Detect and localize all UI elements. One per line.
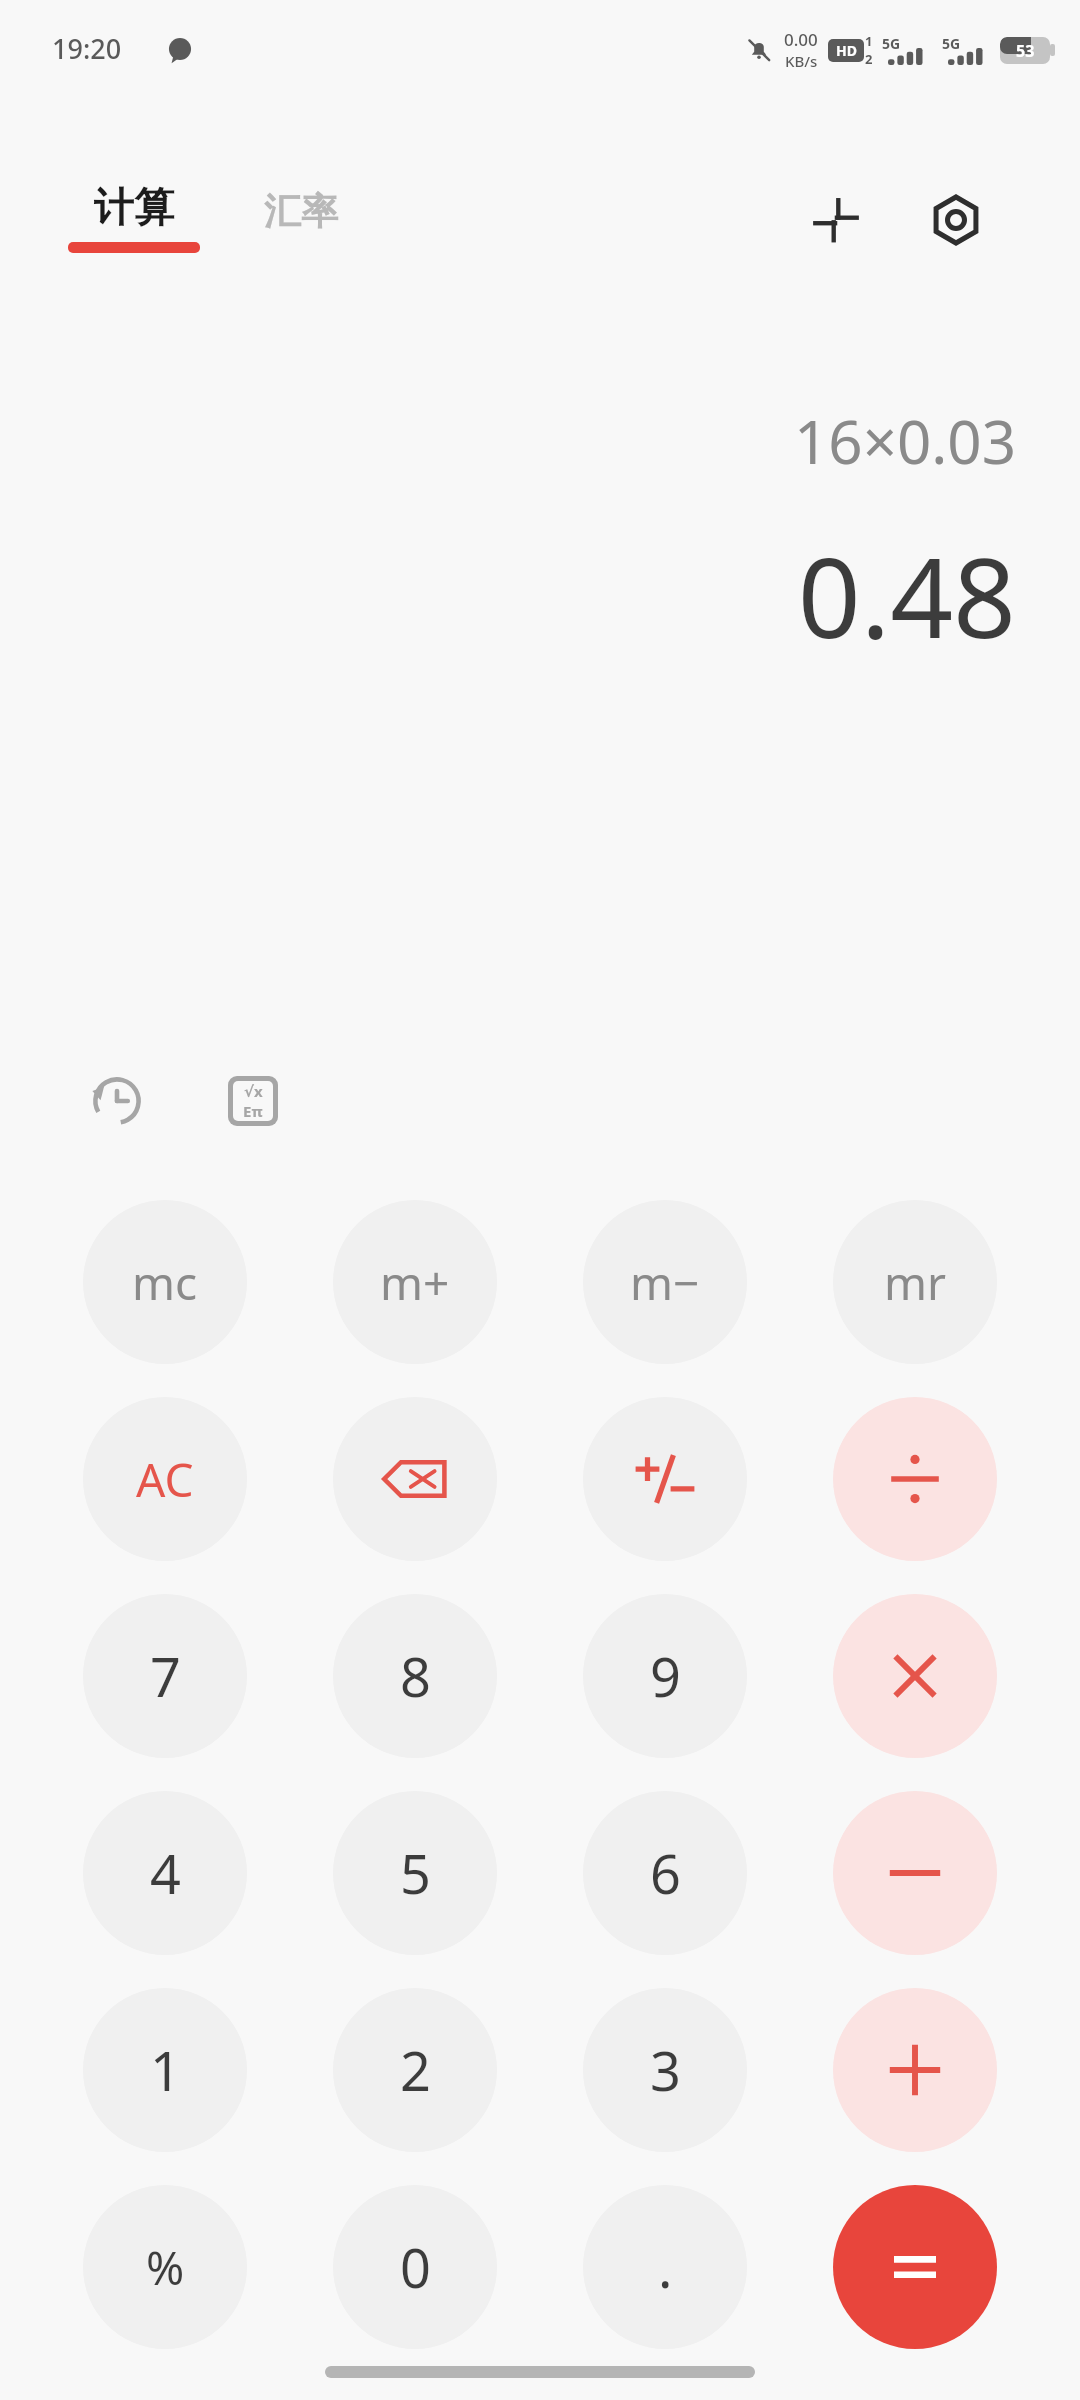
staticText: 9	[650, 1639, 681, 1713]
button[interactable]: AC	[83, 1397, 247, 1561]
staticText: 计算	[94, 182, 174, 232]
staticText: 2	[865, 50, 873, 68]
staticText: AC	[136, 1448, 194, 1511]
button[interactable]: mr	[833, 1200, 997, 1364]
staticText: 1	[865, 32, 873, 50]
staticText: 0.48	[797, 520, 1016, 670]
staticText: 19:20	[52, 30, 122, 67]
staticText: 1	[150, 2033, 181, 2107]
button[interactable]: 2	[333, 1988, 497, 2152]
button[interactable]: 3	[583, 1988, 747, 2152]
staticText: mr	[884, 1251, 947, 1314]
staticText: m+	[380, 1251, 450, 1314]
staticText: 5G	[942, 34, 961, 53]
staticText: mc	[132, 1251, 198, 1314]
button[interactable]: 5	[333, 1791, 497, 1955]
staticText: KB/s	[785, 51, 818, 71]
button[interactable]: Expand	[800, 184, 872, 256]
button[interactable]: 6	[583, 1791, 747, 1955]
staticText: 7	[150, 1639, 181, 1713]
button[interactable]: m−	[583, 1200, 747, 1364]
button[interactable]: 8	[333, 1594, 497, 1758]
staticText: 4	[150, 1836, 181, 1910]
button[interactable]: Equals	[833, 2185, 997, 2349]
button[interactable]: 4	[83, 1791, 247, 1955]
staticText: %	[146, 2236, 185, 2299]
staticText: 0	[400, 2230, 431, 2304]
staticText: 5G	[882, 34, 901, 53]
button[interactable]: 7	[83, 1594, 247, 1758]
staticText: Eπ	[243, 1101, 263, 1121]
button[interactable]: 汇率	[258, 182, 344, 241]
button[interactable]: 0	[333, 2185, 497, 2349]
staticText: 3	[650, 2033, 681, 2107]
button[interactable]: Plus	[833, 1988, 997, 2152]
button[interactable]: mc	[83, 1200, 247, 1364]
staticText: 汇率	[264, 188, 338, 235]
button[interactable]: Backspace	[333, 1397, 497, 1561]
button[interactable]: Toggle sign	[583, 1397, 747, 1561]
button[interactable]: %	[83, 2185, 247, 2349]
staticText: 2	[400, 2033, 431, 2107]
button[interactable]: 计算	[64, 178, 204, 257]
button[interactable]: Minus	[833, 1791, 997, 1955]
button[interactable]: .	[583, 2185, 747, 2349]
button[interactable]: Divide	[833, 1397, 997, 1561]
button[interactable]: Multiply	[833, 1594, 997, 1758]
staticText: m−	[630, 1251, 700, 1314]
staticText: √x	[244, 1081, 263, 1101]
staticText: .	[658, 2230, 673, 2304]
staticText: 8	[400, 1639, 431, 1713]
staticText: 5	[400, 1836, 431, 1910]
staticText: HD	[836, 41, 857, 60]
button[interactable]: History	[78, 1062, 156, 1140]
button[interactable]: m+	[333, 1200, 497, 1364]
button[interactable]: 9	[583, 1594, 747, 1758]
staticText: 16×0.03	[794, 400, 1016, 482]
button[interactable]: Scientific	[214, 1062, 292, 1140]
button[interactable]: 1	[83, 1988, 247, 2152]
button[interactable]: Settings	[920, 184, 992, 256]
staticText: 6	[650, 1836, 681, 1910]
staticText: 53	[1016, 40, 1035, 62]
staticText: 0.00	[784, 28, 818, 51]
